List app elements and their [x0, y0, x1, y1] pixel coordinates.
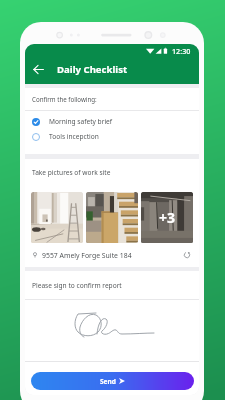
button[interactable]: Send	[31, 372, 194, 390]
staticText: +3	[159, 208, 176, 227]
staticText: Please sign to confirm report	[32, 281, 122, 290]
button[interactable]: Work site photo	[86, 192, 138, 243]
staticText: Send	[100, 377, 116, 386]
staticText: Confirm the following:	[32, 95, 97, 103]
staticText: 9557 Amely Forge Suite 184	[42, 251, 132, 260]
staticText: Daily Checklist	[57, 63, 128, 76]
button[interactable]: Work site photo	[31, 192, 83, 243]
staticText: 12:30	[172, 46, 191, 56]
staticText: Tools incepction	[49, 132, 99, 141]
button[interactable]: Work site photo	[141, 192, 193, 243]
button[interactable]: Morning safety brief	[25, 114, 199, 129]
button[interactable]: Signature pad	[25, 300, 199, 361]
button[interactable]: Back	[30, 62, 46, 78]
staticText: Take pictures of work site	[32, 168, 111, 177]
button[interactable]: Tools incepction	[25, 129, 199, 144]
staticText: Morning safety brief	[49, 117, 113, 126]
